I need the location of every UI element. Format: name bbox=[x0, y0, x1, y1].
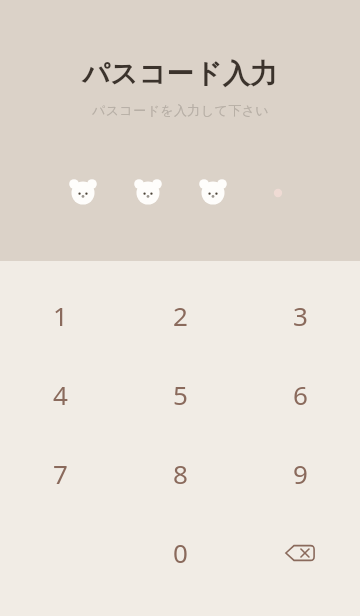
button[interactable]: 2 bbox=[120, 276, 240, 355]
button[interactable]: 9 bbox=[240, 434, 360, 513]
staticText: 2 bbox=[173, 298, 188, 333]
staticText: パスコード入力 bbox=[82, 57, 278, 91]
button[interactable]: 6 bbox=[240, 355, 360, 434]
button[interactable]: 4 bbox=[0, 355, 120, 434]
button[interactable]: Backspace bbox=[240, 513, 360, 592]
staticText: 5 bbox=[173, 377, 188, 412]
staticText: 4 bbox=[53, 377, 68, 412]
button[interactable]: 8 bbox=[120, 434, 240, 513]
button[interactable]: 7 bbox=[0, 434, 120, 513]
staticText: 6 bbox=[293, 377, 308, 412]
button[interactable]: 0 bbox=[120, 513, 240, 592]
button[interactable]: 3 bbox=[240, 276, 360, 355]
button[interactable]: 1 bbox=[0, 276, 120, 355]
staticText: 1 bbox=[53, 298, 68, 333]
button[interactable]: 5 bbox=[120, 355, 240, 434]
staticText: パスコードを入力して下さい bbox=[92, 102, 269, 118]
staticText: 3 bbox=[293, 298, 308, 333]
staticText: 9 bbox=[293, 456, 308, 491]
staticText: 7 bbox=[53, 456, 68, 491]
staticText: 0 bbox=[173, 535, 188, 570]
staticText: 8 bbox=[173, 456, 188, 491]
